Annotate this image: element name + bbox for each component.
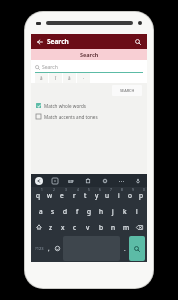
- button[interactable]: y: [91, 187, 102, 203]
- staticText: p: [139, 191, 143, 200]
- staticText: i: [118, 191, 120, 200]
- staticText: GIF: [68, 179, 74, 184]
- button[interactable]: b: [94, 219, 107, 235]
- button[interactable]: Search: [132, 36, 144, 48]
- staticText: j: [112, 207, 114, 216]
- button[interactable]: q: [32, 187, 44, 203]
- staticText: Search: [47, 37, 69, 46]
- button[interactable]: s: [47, 203, 59, 219]
- staticText: t: [84, 191, 87, 200]
- staticText: 6: [99, 188, 101, 192]
- staticText: 8: [121, 188, 123, 192]
- button[interactable]: c: [69, 219, 81, 235]
- button[interactable]: d: [59, 203, 71, 219]
- button[interactable]: x: [57, 219, 69, 235]
- button[interactable]: t: [80, 187, 91, 203]
- button[interactable]: Settings: [100, 176, 110, 186]
- staticText: Match accents and tones: [44, 114, 98, 120]
- button[interactable]: r: [68, 187, 80, 203]
- staticText: w: [47, 191, 53, 200]
- staticText: s: [51, 207, 55, 216]
- button[interactable]: SEARCH: [112, 85, 142, 96]
- staticText: m: [123, 223, 130, 232]
- button[interactable]: More options: [116, 176, 126, 186]
- staticText: 3: [65, 188, 67, 192]
- button[interactable]: j: [107, 203, 119, 219]
- button[interactable]: Match accents and tones: [31, 111, 147, 122]
- staticText: l: [136, 207, 138, 216]
- staticText: c: [73, 223, 77, 232]
- button[interactable]: Search: [31, 49, 147, 60]
- button[interactable]: w: [44, 187, 56, 203]
- button[interactable]: i: [113, 187, 124, 203]
- button[interactable]: z: [45, 219, 57, 235]
- button[interactable]: o: [124, 187, 135, 203]
- button[interactable]: Search: [129, 236, 145, 261]
- staticText: .: [124, 245, 126, 253]
- staticText: r: [73, 191, 76, 200]
- staticText: â: [68, 75, 71, 81]
- staticText: 0: [143, 188, 145, 192]
- staticText: 1: [41, 188, 43, 192]
- button[interactable]: Period: [121, 236, 129, 261]
- staticText: h: [99, 207, 104, 216]
- button[interactable]: GIF: [66, 176, 76, 186]
- staticText: Search: [42, 64, 58, 71]
- button[interactable]: u: [102, 187, 113, 203]
- staticText: Match whole words: [44, 103, 87, 109]
- button[interactable]: Backspace: [133, 219, 146, 235]
- button[interactable]: k: [119, 203, 131, 219]
- button[interactable]: e: [56, 187, 68, 203]
- staticText: ă: [40, 75, 43, 81]
- button[interactable]: a: [35, 203, 47, 219]
- staticText: v: [86, 223, 90, 232]
- button[interactable]: ă: [35, 73, 48, 83]
- staticText: a: [39, 207, 43, 216]
- button[interactable]: â: [63, 73, 76, 83]
- button[interactable]: Collapse toolbar: [35, 177, 43, 185]
- button[interactable]: f: [71, 203, 83, 219]
- button[interactable]: Back: [34, 36, 46, 48]
- staticText: g: [87, 207, 91, 216]
- staticText: 7: [110, 188, 112, 192]
- button[interactable]: p: [135, 187, 146, 203]
- staticText: ·: [83, 75, 85, 81]
- button[interactable]: n: [107, 219, 120, 235]
- staticText: e: [60, 191, 64, 200]
- button[interactable]: m: [120, 219, 133, 235]
- button[interactable]: h: [95, 203, 107, 219]
- staticText: o: [128, 191, 132, 200]
- staticText: SEARCH: [120, 88, 135, 93]
- button[interactable]: Voice input: [133, 176, 143, 186]
- button[interactable]: g: [83, 203, 95, 219]
- staticText: Search: [80, 51, 99, 58]
- staticText: b: [99, 223, 103, 232]
- staticText: ,: [48, 245, 50, 253]
- button[interactable]: ?123: [33, 236, 45, 261]
- button[interactable]: ·: [77, 73, 90, 83]
- staticText: 4: [77, 188, 79, 192]
- staticText: x: [61, 223, 65, 232]
- button[interactable]: Shift: [32, 219, 45, 235]
- button[interactable]: Emoji: [53, 236, 62, 261]
- button[interactable]: Match whole words: [31, 100, 147, 111]
- staticText: ?123: [35, 246, 44, 251]
- staticText: 2: [53, 188, 55, 192]
- staticText: d: [63, 207, 67, 216]
- button[interactable]: Comma: [45, 236, 53, 261]
- staticText: y: [95, 191, 99, 200]
- staticText: 9: [132, 188, 134, 192]
- staticText: î: [55, 75, 57, 81]
- button[interactable]: Stickers: [50, 176, 60, 186]
- button[interactable]: v: [81, 219, 94, 235]
- staticText: 5: [88, 188, 90, 192]
- staticText: n: [111, 223, 116, 232]
- button[interactable]: l: [131, 203, 143, 219]
- button[interactable]: î: [49, 73, 62, 83]
- staticText: q: [36, 191, 40, 200]
- staticText: f: [76, 207, 79, 216]
- staticText: u: [105, 191, 110, 200]
- button[interactable]: Clipboard: [83, 176, 93, 186]
- button[interactable]: Search: [35, 63, 143, 72]
